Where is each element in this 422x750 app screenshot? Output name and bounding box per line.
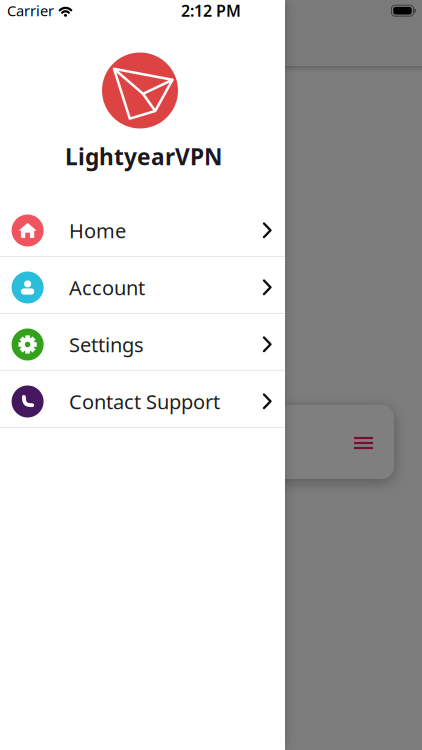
- button[interactable]: Home: [0, 202, 285, 259]
- staticText: Carrier: [7, 1, 54, 20]
- staticText: Account: [69, 274, 145, 301]
- staticText: Settings: [69, 331, 144, 358]
- staticText: Contact Support: [69, 388, 220, 415]
- staticText: 2:12 PM: [181, 0, 241, 21]
- staticText: LightyearVPN: [65, 141, 222, 171]
- button[interactable]: Settings: [0, 316, 285, 373]
- button[interactable]: Account: [0, 259, 285, 316]
- staticText: Home: [69, 217, 126, 244]
- button[interactable]: Menu: [354, 437, 373, 449]
- button[interactable]: Contact Support: [0, 373, 285, 430]
